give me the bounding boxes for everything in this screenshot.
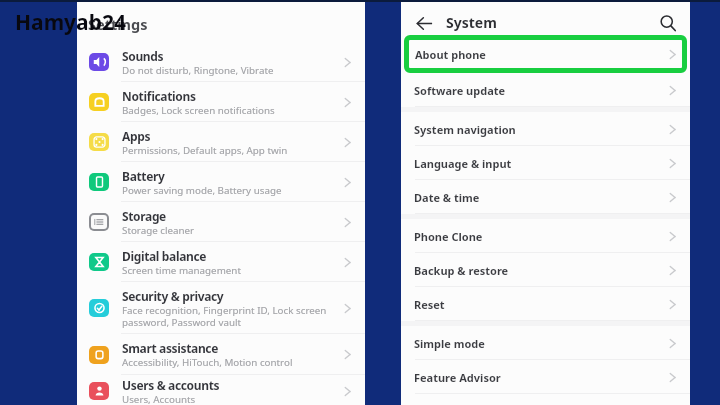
- button[interactable]: Battery: [77, 162, 365, 202]
- staticText: Screen time management: [122, 264, 241, 277]
- button[interactable]: About phone: [404, 35, 687, 73]
- staticText: Battery: [122, 168, 165, 184]
- button[interactable]: Storage: [77, 202, 365, 242]
- staticText: Language & input: [414, 156, 512, 171]
- staticText: Badges, Lock screen notifications: [122, 104, 275, 117]
- button[interactable]: Simple mode: [401, 326, 690, 360]
- staticText: Apps: [122, 128, 151, 144]
- staticText: Simple mode: [414, 336, 485, 351]
- staticText: Storage cleaner: [122, 224, 195, 237]
- button[interactable]: Language & input: [401, 146, 690, 180]
- button[interactable]: Sounds: [77, 42, 365, 82]
- staticText: Users, Accounts: [122, 393, 196, 405]
- staticText: Feature Advisor: [414, 370, 501, 385]
- staticText: Do not disturb, Ringtone, Vibrate: [122, 64, 274, 77]
- button[interactable]: Notifications: [77, 82, 365, 122]
- staticText: Security & privacy: [122, 288, 224, 304]
- staticText: Backup & restore: [414, 263, 509, 278]
- button[interactable]: Users & accounts: [77, 375, 365, 405]
- button[interactable]: Back: [415, 14, 434, 33]
- staticText: Date & time: [414, 190, 480, 205]
- button[interactable]: Phone Clone: [401, 219, 690, 253]
- staticText: Sounds: [122, 48, 164, 64]
- staticText: Storage: [122, 208, 166, 224]
- staticText: Power saving mode, Battery usage: [122, 184, 282, 197]
- staticText: Accessibility, HiTouch, Motion control: [122, 356, 293, 369]
- button[interactable]: Software update: [401, 73, 690, 107]
- staticText: Smart assistance: [122, 340, 218, 356]
- staticText: Face recognition, Fingerprint ID, Lock s…: [122, 304, 327, 329]
- staticText: Phone Clone: [414, 229, 483, 244]
- button[interactable]: Smart assistance: [77, 334, 365, 375]
- staticText: Software update: [414, 83, 506, 98]
- button[interactable]: Date & time: [401, 180, 690, 214]
- staticText: About phone: [415, 47, 486, 62]
- staticText: Settings: [88, 14, 148, 34]
- staticText: Digital balance: [122, 248, 207, 264]
- staticText: Permissions, Default apps, App twin: [122, 144, 288, 157]
- button[interactable]: System navigation: [401, 112, 690, 146]
- staticText: System navigation: [414, 122, 516, 137]
- staticText: Users & accounts: [122, 377, 220, 393]
- button[interactable]: Reset: [401, 287, 690, 321]
- button[interactable]: Search: [659, 14, 677, 32]
- button[interactable]: Security & privacy: [77, 282, 365, 334]
- staticText: Notifications: [122, 88, 196, 104]
- button[interactable]: Digital balance: [77, 242, 365, 282]
- button[interactable]: Backup & restore: [401, 253, 690, 287]
- staticText: Reset: [414, 297, 445, 312]
- button[interactable]: Apps: [77, 122, 365, 162]
- staticText: System: [446, 13, 497, 32]
- button[interactable]: Feature Advisor: [401, 360, 690, 394]
- staticText: Hamyab24: [15, 8, 126, 37]
